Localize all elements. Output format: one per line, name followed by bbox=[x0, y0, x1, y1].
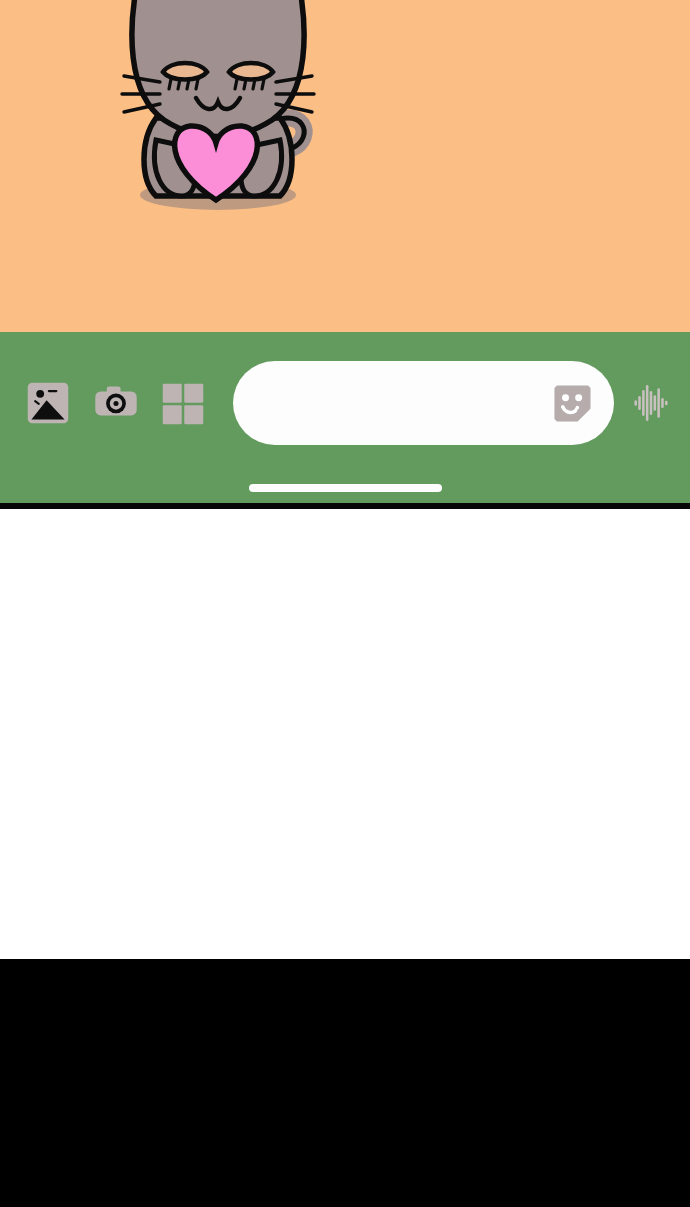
button[interactable]: Apps bbox=[160, 380, 206, 426]
button[interactable]: Voice message bbox=[628, 380, 674, 426]
button[interactable]: Stickers bbox=[552, 383, 593, 424]
button[interactable]: Stickers bbox=[233, 361, 614, 445]
button[interactable]: Gallery bbox=[25, 380, 71, 426]
button[interactable]: Camera bbox=[93, 380, 139, 426]
